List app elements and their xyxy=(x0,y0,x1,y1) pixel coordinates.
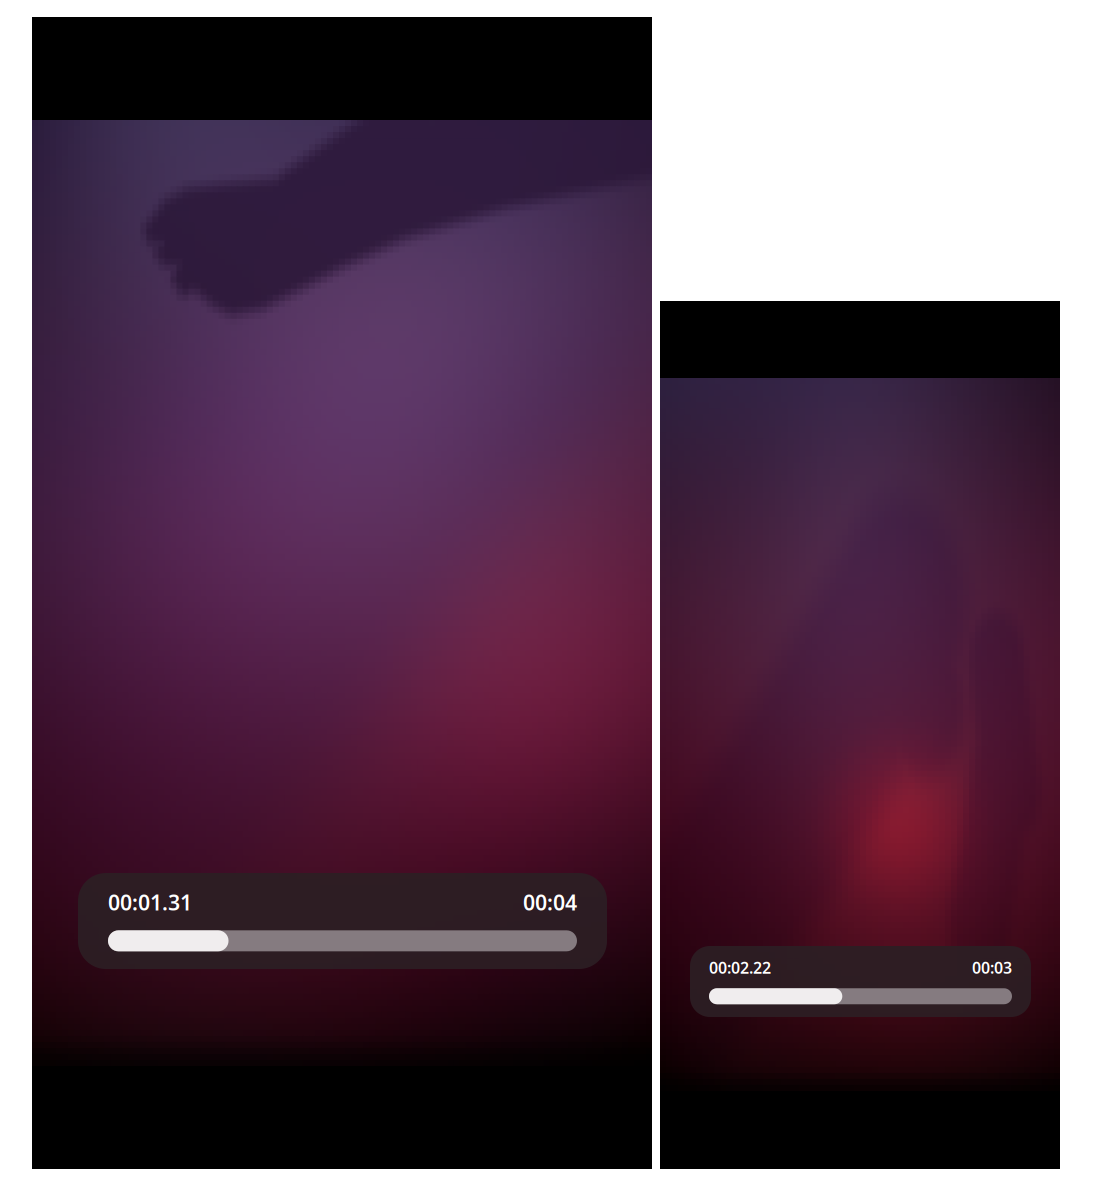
button[interactable]: 00:01.31 xyxy=(78,873,607,969)
button[interactable]: 00:02.22 xyxy=(690,946,1031,1017)
staticText: 00:01.31 xyxy=(108,888,192,916)
staticText: 00:03 xyxy=(972,957,1012,978)
staticText: 00:04 xyxy=(523,888,577,916)
staticText: 00:02.22 xyxy=(709,957,771,978)
